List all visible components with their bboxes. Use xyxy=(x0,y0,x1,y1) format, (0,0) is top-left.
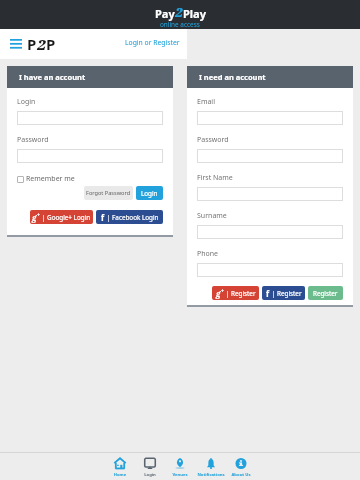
staticText: | Google+ Login xyxy=(42,213,91,222)
button[interactable] xyxy=(197,111,343,125)
staticText: Remember me xyxy=(26,174,75,184)
staticText: Login xyxy=(135,472,165,478)
button[interactable]: Home xyxy=(105,453,135,480)
staticText: Login xyxy=(141,189,158,198)
button[interactable] xyxy=(17,111,163,125)
staticText: P xyxy=(27,34,37,54)
staticText: I have an account xyxy=(19,72,86,82)
button[interactable]: Login or Register xyxy=(125,38,180,47)
button[interactable]: Venues xyxy=(165,453,195,480)
staticText: First Name xyxy=(197,173,233,183)
staticText: | Facebook Login xyxy=(107,213,159,222)
button[interactable]: f xyxy=(96,210,163,224)
button[interactable]: Login xyxy=(135,453,165,480)
staticText: + xyxy=(37,212,40,219)
staticText: Home xyxy=(105,472,135,478)
staticText: P xyxy=(46,34,56,54)
staticText: Password xyxy=(17,135,49,145)
staticText: Phone xyxy=(197,249,219,259)
staticText: Login xyxy=(17,97,36,107)
staticText: Pay xyxy=(155,6,175,21)
staticText: + xyxy=(221,288,224,295)
staticText: | Register xyxy=(226,289,256,298)
staticText: f xyxy=(101,212,105,223)
staticText: 2 xyxy=(175,3,183,21)
button[interactable] xyxy=(197,225,343,239)
staticText: | Register xyxy=(272,289,302,298)
button[interactable]: About Us xyxy=(226,453,256,480)
button[interactable]: Menu xyxy=(10,39,22,49)
staticText: g xyxy=(216,288,221,299)
button[interactable]: g xyxy=(30,210,93,224)
button[interactable] xyxy=(17,149,163,163)
staticText: Venues xyxy=(165,472,195,478)
staticText: Password xyxy=(197,135,229,145)
button[interactable] xyxy=(197,187,343,201)
staticText: online access xyxy=(160,20,200,29)
staticText: About Us xyxy=(226,472,256,478)
button[interactable] xyxy=(197,149,343,163)
staticText: Forgot Password xyxy=(86,189,131,197)
button[interactable]: Remember me xyxy=(17,174,75,184)
staticText: g xyxy=(32,212,37,223)
staticText: Register xyxy=(313,289,338,298)
button[interactable] xyxy=(197,263,343,277)
staticText: Surname xyxy=(197,211,227,221)
staticText: I need an account xyxy=(199,72,266,82)
button[interactable]: Notifications xyxy=(196,453,226,480)
button[interactable]: f xyxy=(262,286,305,300)
staticText: Play xyxy=(183,6,206,21)
staticText: Notifications xyxy=(196,472,226,478)
button[interactable]: Forgot Password xyxy=(84,186,133,200)
button[interactable]: Login xyxy=(136,186,163,200)
button[interactable]: Register xyxy=(308,286,343,300)
staticText: 2 xyxy=(37,34,46,54)
button[interactable]: g xyxy=(212,286,259,300)
staticText: Email xyxy=(197,97,215,107)
staticText: f xyxy=(266,288,270,299)
staticText: Login or Register xyxy=(125,38,180,47)
